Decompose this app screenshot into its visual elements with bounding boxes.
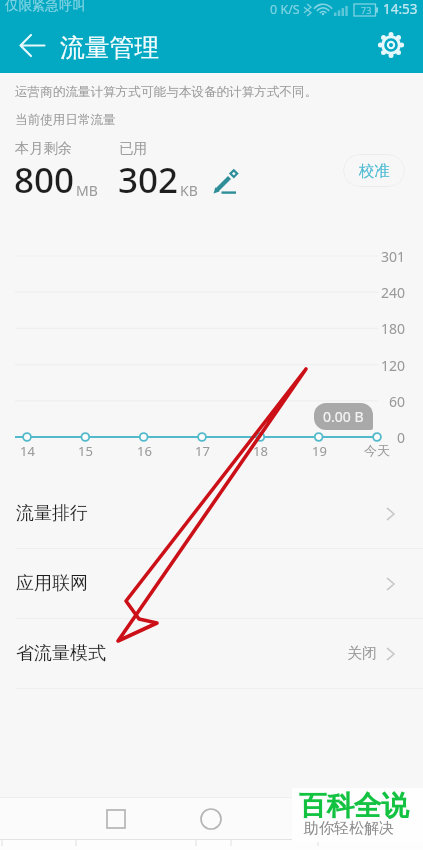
- button[interactable]: Recents: [190, 798, 232, 840]
- staticText: 流量管理: [60, 32, 160, 63]
- button[interactable]: Back: [11, 25, 52, 66]
- staticText: 73: [361, 4, 372, 16]
- staticText: KB: [180, 181, 198, 200]
- staticText: 17: [195, 442, 210, 460]
- staticText: 180: [381, 319, 406, 338]
- staticText: 当前使用日常流量: [15, 112, 116, 128]
- button[interactable]: 校准: [343, 154, 405, 187]
- staticText: 15: [78, 442, 93, 460]
- staticText: 校准: [359, 161, 390, 181]
- staticText: 应用联网: [16, 572, 88, 595]
- staticText: 今天: [364, 442, 390, 458]
- staticText: 60: [389, 392, 406, 411]
- staticText: 301: [381, 247, 406, 266]
- staticText: 18: [253, 442, 268, 460]
- button[interactable]: Home: [95, 798, 137, 840]
- staticText: 302: [118, 156, 179, 204]
- button[interactable]: Edit: [212, 167, 242, 197]
- staticText: 已用: [119, 139, 148, 157]
- staticText: 120: [381, 356, 406, 375]
- staticText: 16: [137, 442, 152, 460]
- staticText: 19: [312, 442, 327, 460]
- button[interactable]: Settings: [371, 25, 411, 65]
- staticText: 800: [14, 156, 75, 204]
- staticText: 14: [20, 442, 35, 460]
- staticText: 本月剩余: [15, 139, 72, 157]
- button[interactable]: 流量排行: [0, 479, 423, 549]
- staticText: 省流量模式: [16, 642, 106, 665]
- staticText: 仅限紧急呼叫: [5, 0, 86, 14]
- button[interactable]: 应用联网: [0, 549, 423, 619]
- staticText: 0 K/S: [270, 1, 300, 18]
- staticText: 240: [381, 283, 406, 302]
- staticText: 14:53: [383, 0, 418, 18]
- staticText: 0.00 B: [323, 407, 364, 426]
- button[interactable]: 省流量模式: [0, 619, 423, 689]
- staticText: 百科全说: [299, 789, 409, 824]
- staticText: 0: [397, 428, 406, 447]
- staticText: 关闭: [347, 644, 377, 663]
- staticText: 流量排行: [16, 502, 88, 525]
- staticText: 运营商的流量计算方式可能与本设备的计算方式不同。: [15, 84, 318, 100]
- staticText: 助你轻松解决: [304, 819, 394, 838]
- staticText: MB: [76, 181, 98, 200]
